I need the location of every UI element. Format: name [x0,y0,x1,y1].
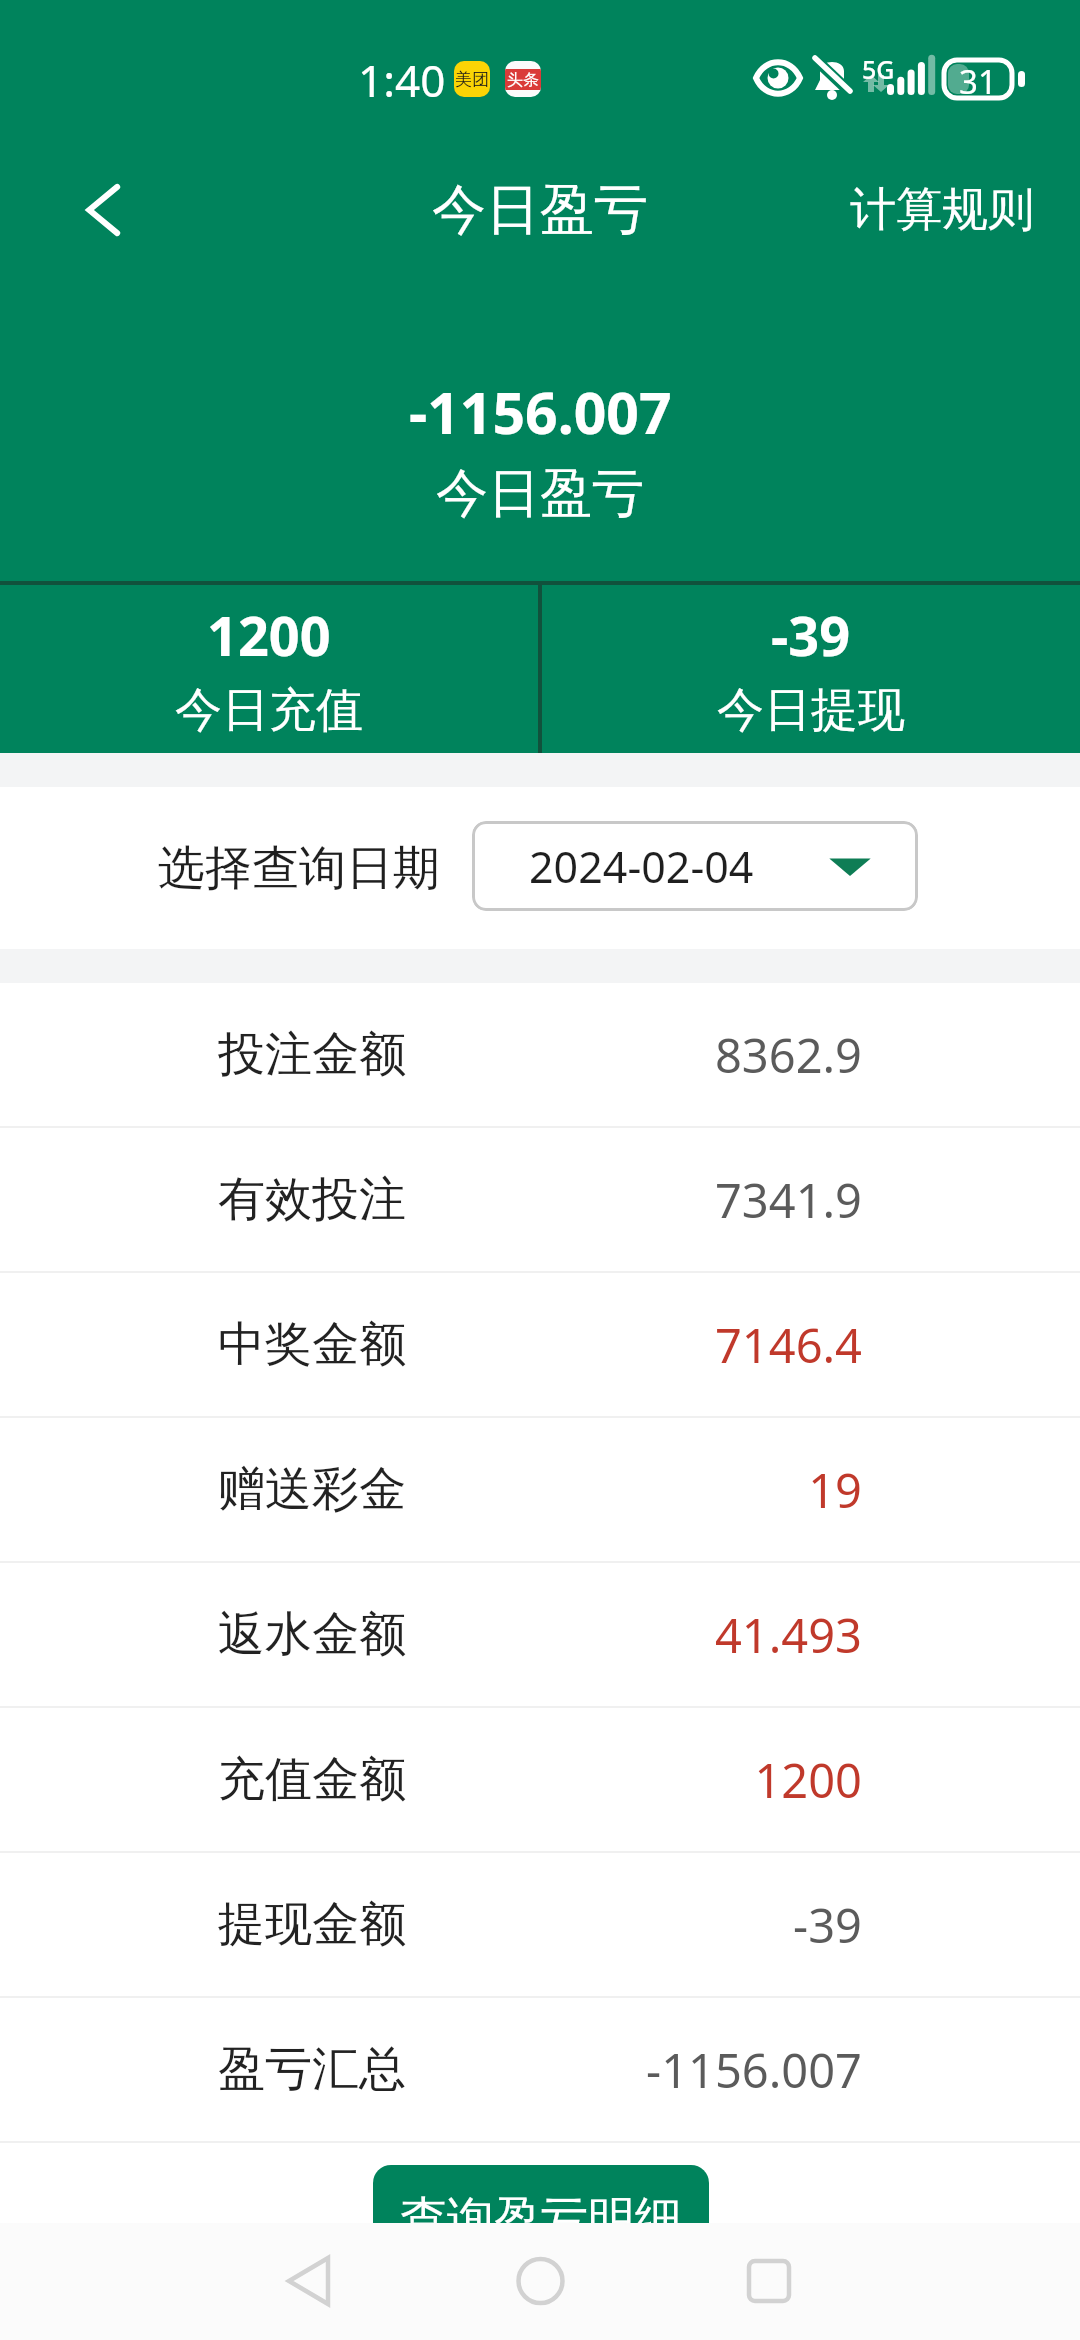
button[interactable]: Home [450,2223,630,2340]
staticText: 今日提现 [717,681,905,740]
button[interactable]: 赠送彩金 [0,1418,1080,1561]
staticText: 美团 [455,69,489,90]
staticText: 41.493 [714,1603,862,1667]
staticText: 7341.9 [714,1168,862,1232]
button[interactable]: 有效投注 [0,1128,1080,1271]
staticText: 赠送彩金 [218,1460,406,1519]
staticText: 今日盈亏 [432,176,648,244]
staticText: 今日盈亏 [436,461,644,527]
button[interactable]: -39 [542,585,1080,753]
staticText: 7146.4 [714,1313,862,1377]
button[interactable]: 查询盈亏明细 [373,2165,709,2245]
button[interactable]: 返水金额 [0,1563,1080,1706]
staticText: 查询盈亏明细 [400,2190,682,2245]
staticText: 8362.9 [714,1023,862,1087]
staticText: 计算规则 [850,181,1034,239]
button[interactable]: 1200 [0,585,538,753]
button[interactable]: 2024-02-04 [472,821,918,911]
staticText: 5G [862,52,895,86]
button[interactable]: Back [56,162,152,258]
staticText: 有效投注 [218,1170,406,1229]
staticText: -39 [793,1893,862,1957]
staticText: 选择查询日期 [158,839,440,898]
staticText: 1200 [207,598,331,672]
staticText: 返水金额 [218,1605,406,1664]
button[interactable]: 计算规则 [842,173,1042,247]
staticText: 头条 [507,70,539,90]
button[interactable]: Recents [679,2223,859,2340]
button[interactable]: 提现金额 [0,1853,1080,1996]
button[interactable]: 投注金额 [0,983,1080,1126]
staticText: 充值金额 [218,1750,406,1809]
button[interactable]: 中奖金额 [0,1273,1080,1416]
staticText: -1156.007 [646,2038,862,2102]
staticText: 盈亏汇总 [218,2040,406,2099]
staticText: 2024-02-04 [529,837,754,896]
staticText: 提现金额 [218,1895,406,1954]
button[interactable]: 充值金额 [0,1708,1080,1851]
staticText: -39 [771,598,851,672]
staticText: 19 [808,1458,862,1522]
button[interactable]: 盈亏汇总 [0,1998,1080,2141]
staticText: 1:40 [358,50,446,110]
staticText: 31 [959,59,997,97]
staticText: 1200 [754,1748,862,1812]
staticText: 中奖金额 [218,1315,406,1374]
staticText: 今日充值 [175,681,363,740]
button[interactable]: Back [218,2223,398,2340]
staticText: 投注金额 [218,1025,406,1084]
staticText: -1156.007 [409,373,672,451]
